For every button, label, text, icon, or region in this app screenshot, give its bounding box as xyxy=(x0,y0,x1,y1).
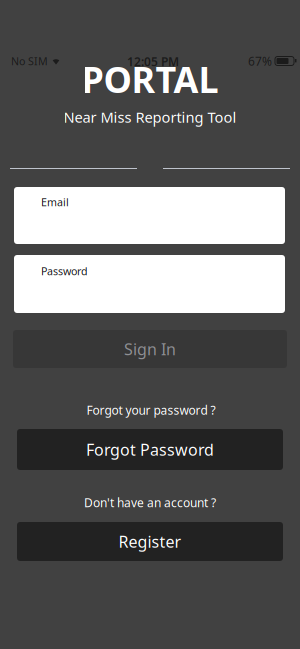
staticText: Near Miss Reporting Tool xyxy=(63,107,236,127)
staticText: 12:05 PM xyxy=(127,53,179,69)
staticText: Sign In xyxy=(124,338,176,360)
button[interactable]: Email xyxy=(14,187,285,244)
staticText: Register xyxy=(118,531,181,552)
staticText: Password xyxy=(41,264,88,278)
staticText: Forgot Password xyxy=(86,439,214,460)
staticText: Forgot your password ? xyxy=(86,402,215,418)
button[interactable]: Sign In xyxy=(13,330,287,368)
staticText: PORTAL xyxy=(81,55,218,103)
staticText: 67% xyxy=(248,53,272,69)
staticText: Email xyxy=(41,195,69,209)
button[interactable]: Register xyxy=(17,522,283,561)
button[interactable]: Password xyxy=(14,255,285,313)
staticText: No SIM xyxy=(11,54,48,68)
staticText: Don't have an account ? xyxy=(84,494,216,510)
button[interactable]: Forgot Password xyxy=(17,429,283,470)
